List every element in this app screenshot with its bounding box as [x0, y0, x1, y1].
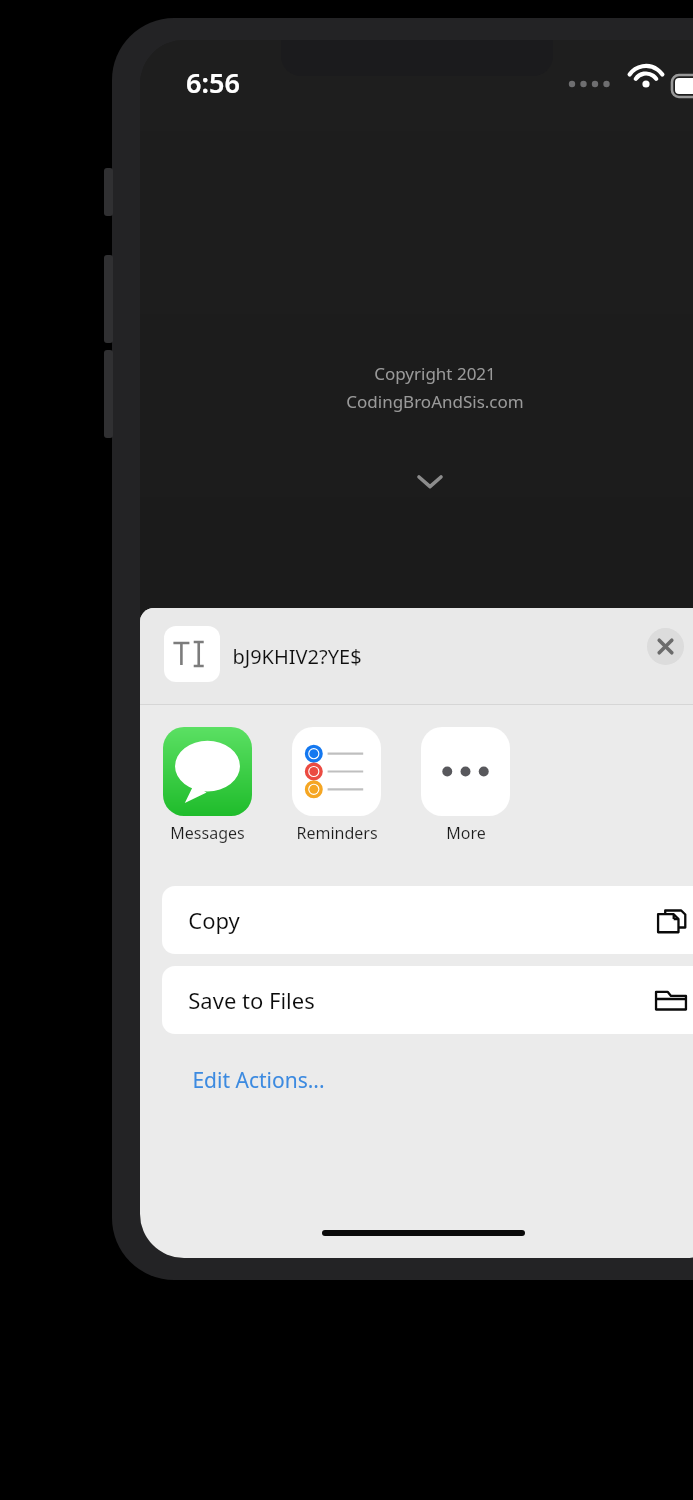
- button[interactable]: Reminders: [292, 727, 381, 844]
- staticText: Save to Files: [188, 985, 315, 1015]
- button[interactable]: Save to Files: [162, 966, 693, 1034]
- staticText: Edit Actions...: [192, 1066, 325, 1095]
- other: Collapse: [405, 468, 455, 498]
- staticText: Copyright 2021: [374, 362, 496, 385]
- button[interactable]: Messages: [163, 727, 252, 844]
- staticText: More: [446, 822, 486, 844]
- button[interactable]: Copy: [162, 886, 693, 954]
- staticText: Messages: [170, 822, 245, 844]
- staticText: 6:56: [186, 64, 240, 101]
- staticText: CodingBroAndSis.com: [346, 390, 524, 413]
- staticText: Copy: [188, 905, 240, 935]
- button[interactable]: Close: [647, 628, 684, 665]
- staticText: bJ9KHIV2?YE$: [232, 643, 362, 670]
- button[interactable]: More: [421, 727, 510, 844]
- staticText: Reminders: [296, 822, 378, 844]
- button[interactable]: Edit Actions...: [140, 1060, 693, 1104]
